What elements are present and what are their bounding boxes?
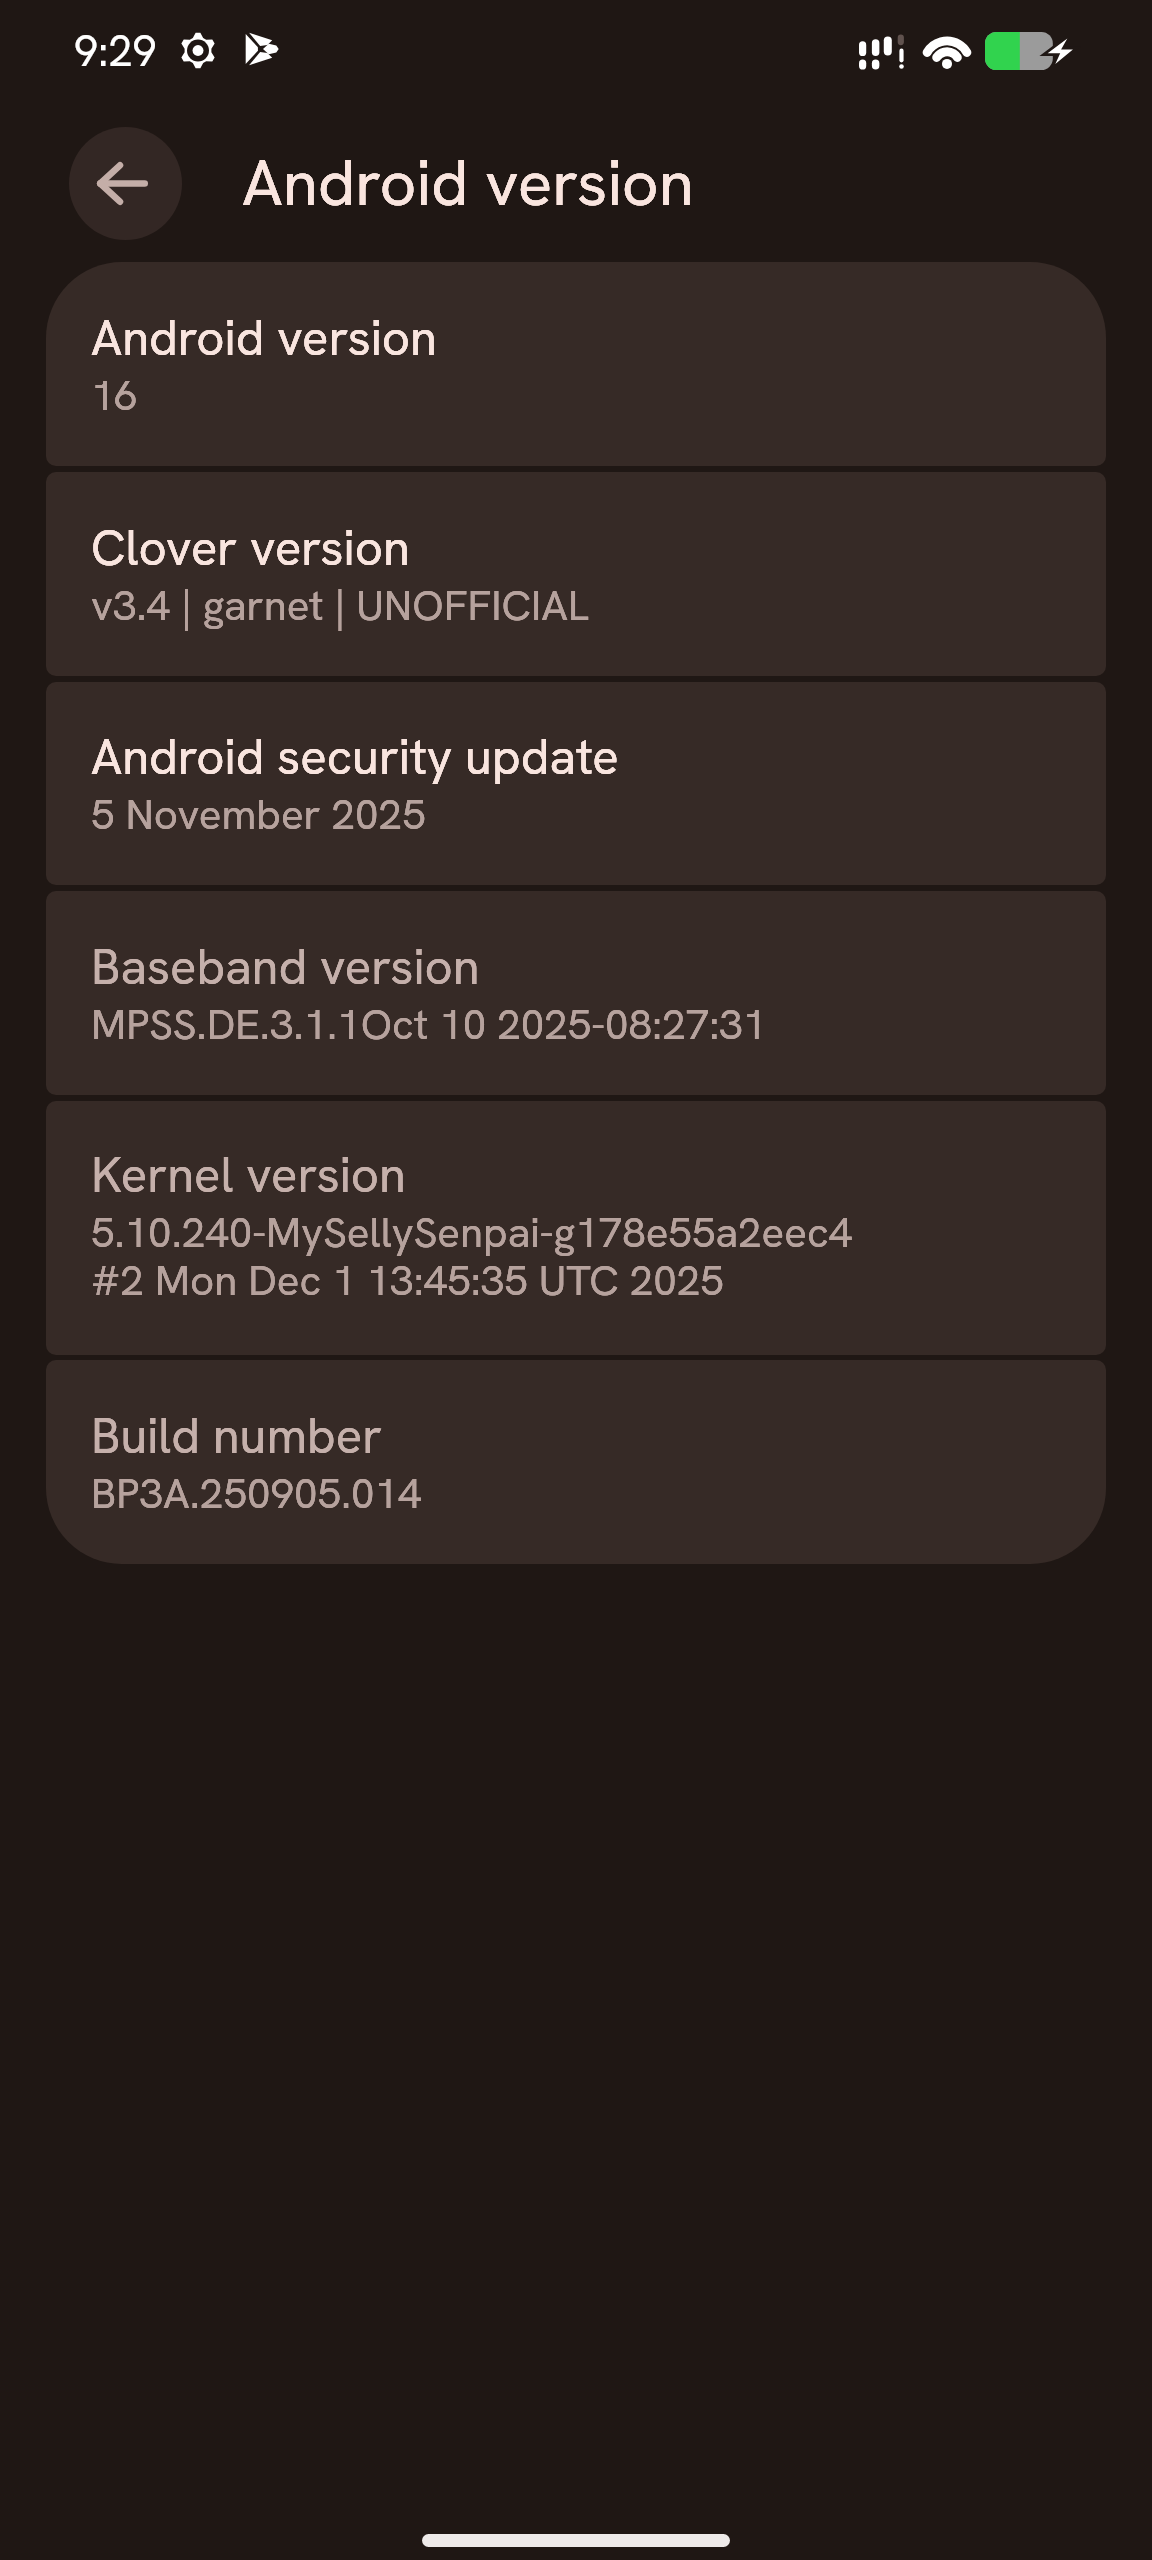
staticText: Build number bbox=[91, 1404, 383, 1468]
staticText: 16 bbox=[91, 368, 139, 423]
staticText: Clover version bbox=[91, 516, 410, 580]
button[interactable]: Back bbox=[69, 127, 182, 240]
staticText: 16 bbox=[91, 368, 139, 423]
staticText: v3.4 | garnet | UNOFFICIAL bbox=[91, 578, 589, 633]
staticText: Kernel version bbox=[91, 1143, 406, 1207]
staticText: 9:29 bbox=[74, 23, 157, 79]
staticText: Android version bbox=[242, 141, 694, 224]
staticText: Build number bbox=[91, 1404, 383, 1468]
staticText: Android version bbox=[91, 306, 437, 370]
staticText: #2 Mon Dec 1 13:45:35 UTC 2025 bbox=[91, 1253, 724, 1308]
button[interactable] bbox=[46, 262, 1106, 466]
staticText: 5.10.240-MySellySenpai-g178e55a2eec4 bbox=[91, 1205, 853, 1260]
button[interactable] bbox=[46, 891, 1106, 1095]
staticText: Android security update bbox=[91, 725, 619, 789]
staticText: 5.10.240-MySellySenpai-g178e55a2eec4 bbox=[91, 1205, 853, 1260]
staticText: Baseband version bbox=[91, 935, 480, 999]
staticText: Android version bbox=[91, 306, 437, 370]
staticText: Kernel version bbox=[91, 1143, 406, 1207]
staticText: 5 November 2025 bbox=[91, 787, 426, 842]
button[interactable] bbox=[46, 472, 1106, 676]
button[interactable] bbox=[46, 682, 1106, 885]
staticText: #2 Mon Dec 1 13:45:35 UTC 2025 bbox=[91, 1253, 724, 1308]
staticText: Clover version bbox=[91, 516, 410, 580]
staticText: 5 November 2025 bbox=[91, 787, 426, 842]
staticText: MPSS.DE.3.1.1Oct 10 2025-08:27:31 bbox=[91, 997, 767, 1052]
staticText: BP3A.250905.014 bbox=[91, 1466, 422, 1521]
staticText: Android version bbox=[242, 141, 694, 224]
staticText: Android security update bbox=[91, 725, 619, 789]
staticText: BP3A.250905.014 bbox=[91, 1466, 422, 1521]
staticText: Baseband version bbox=[91, 935, 480, 999]
staticText: v3.4 | garnet | UNOFFICIAL bbox=[91, 578, 589, 633]
staticText: MPSS.DE.3.1.1Oct 10 2025-08:27:31 bbox=[91, 997, 767, 1052]
button[interactable] bbox=[46, 1101, 1106, 1355]
button[interactable] bbox=[46, 1360, 1106, 1564]
